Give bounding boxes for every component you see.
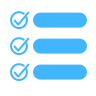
button[interactable]: Completed task 3 [10,63,96,81]
button[interactable]: Completed task 2 [10,37,96,55]
button[interactable]: Completed task 1 [10,11,96,29]
